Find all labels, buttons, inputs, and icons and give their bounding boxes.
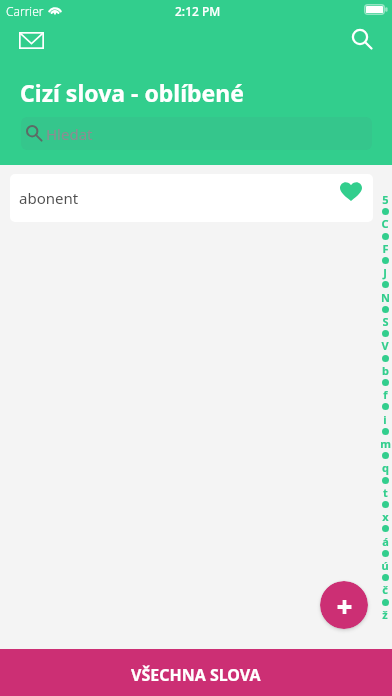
button[interactable]: abonent — [10, 174, 373, 222]
button[interactable]: Search — [339, 19, 385, 59]
staticText: f — [383, 387, 388, 402]
staticText: S — [382, 314, 389, 329]
staticText: i — [383, 412, 387, 427]
staticText: ž — [382, 607, 388, 622]
staticText: q — [382, 460, 389, 475]
staticText: ú — [381, 558, 389, 573]
staticText: x — [382, 509, 389, 524]
staticText: J — [383, 265, 387, 280]
staticText: Cizí slova - oblíbené — [20, 77, 244, 108]
button[interactable]: Alphabet index — [376, 192, 392, 632]
staticText: b — [382, 363, 389, 378]
staticText: 2:12 PM — [175, 3, 221, 19]
button[interactable]: Hledat — [21, 117, 372, 150]
button[interactable]: Add word — [320, 581, 368, 629]
staticText: N — [381, 290, 390, 305]
button[interactable]: VŠECHNA SLOVA — [0, 649, 392, 696]
staticText: á — [382, 534, 389, 549]
staticText: Hledat — [46, 124, 93, 144]
staticText: abonent — [19, 188, 79, 208]
staticText: č — [382, 582, 388, 597]
staticText: Carrier — [6, 3, 44, 19]
staticText: m — [380, 436, 391, 451]
staticText: V — [381, 338, 389, 353]
staticText: F — [382, 241, 389, 256]
button[interactable]: Messages — [7, 20, 55, 60]
staticText: VŠECHNA SLOVA — [131, 664, 261, 686]
staticText: 5 — [382, 192, 389, 207]
staticText: C — [381, 216, 389, 231]
staticText: t — [383, 485, 388, 500]
